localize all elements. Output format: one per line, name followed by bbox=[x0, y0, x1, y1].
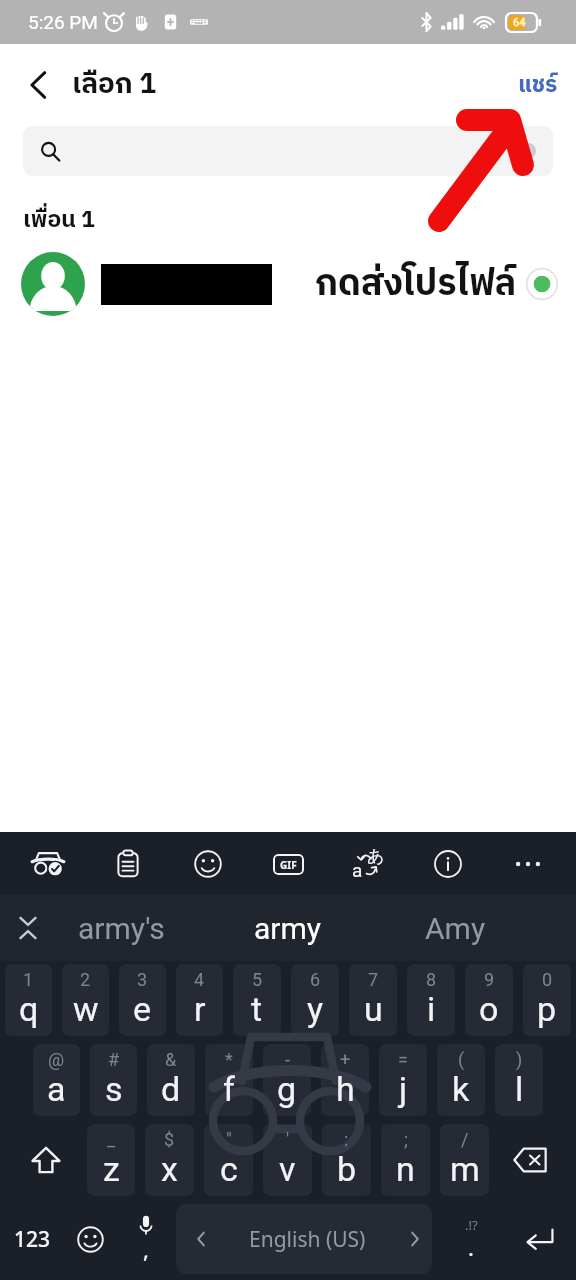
staticText: Amy bbox=[425, 911, 486, 946]
staticText: 9 bbox=[484, 969, 495, 990]
button[interactable]: 5 bbox=[233, 964, 281, 1036]
staticText: army's bbox=[78, 911, 165, 946]
button[interactable]: English (US) bbox=[176, 1204, 440, 1274]
button[interactable]: Clear bbox=[515, 138, 541, 164]
staticText: o bbox=[479, 989, 499, 1029]
staticText: 7 bbox=[368, 969, 379, 990]
button[interactable]: 6 bbox=[291, 964, 339, 1036]
staticText: + bbox=[340, 1049, 351, 1070]
button[interactable]: แชร์ bbox=[500, 54, 576, 116]
button[interactable]: ) bbox=[495, 1044, 543, 1116]
button[interactable]: , bbox=[116, 1204, 176, 1274]
staticText: v bbox=[279, 1149, 296, 1189]
staticText: ) bbox=[516, 1049, 523, 1070]
button[interactable]: ( bbox=[437, 1044, 485, 1116]
button[interactable]: army bbox=[187, 895, 388, 961]
staticText: กดส่งโปรไฟล์ bbox=[315, 255, 517, 314]
button[interactable]: Expand suggestions bbox=[0, 895, 56, 961]
staticText: i bbox=[427, 989, 436, 1029]
staticText: เลือก 1 bbox=[72, 62, 156, 108]
button[interactable]: ; bbox=[381, 1124, 430, 1196]
staticText: r bbox=[194, 989, 206, 1029]
button[interactable]: Enter bbox=[502, 1204, 576, 1274]
staticText: @ bbox=[48, 1049, 65, 1070]
button[interactable]: Translate bbox=[346, 842, 390, 886]
button[interactable]: & bbox=[147, 1044, 195, 1116]
staticText: a bbox=[47, 1069, 66, 1109]
button[interactable]: @ bbox=[33, 1044, 80, 1116]
staticText: u bbox=[364, 989, 383, 1029]
staticText: ; bbox=[404, 1129, 408, 1150]
staticText: x bbox=[161, 1149, 178, 1189]
button[interactable]: 123 bbox=[0, 1204, 64, 1274]
staticText: & bbox=[165, 1049, 177, 1070]
staticText: * bbox=[225, 1049, 233, 1070]
button[interactable]: 9 bbox=[465, 964, 513, 1036]
button[interactable]: 0 bbox=[523, 964, 571, 1036]
button[interactable]: 8 bbox=[407, 964, 455, 1036]
staticText: あ bbox=[367, 846, 385, 867]
staticText: ( bbox=[458, 1049, 465, 1070]
staticText: f bbox=[223, 1069, 235, 1109]
staticText: ' bbox=[286, 1129, 290, 1150]
button[interactable]: = bbox=[379, 1044, 427, 1116]
button[interactable]: Backspace bbox=[489, 1124, 571, 1196]
button[interactable]: _ bbox=[87, 1124, 135, 1196]
button[interactable]: Incognito bbox=[26, 842, 70, 886]
staticText: 123 bbox=[14, 1225, 51, 1254]
staticText: m bbox=[450, 1149, 480, 1189]
staticText: GIF bbox=[280, 858, 297, 872]
button[interactable]: Amy bbox=[388, 895, 522, 961]
button[interactable]: army's bbox=[56, 895, 187, 961]
button[interactable]: กดส่งโปรไฟล์ bbox=[0, 242, 576, 326]
button[interactable]: $ bbox=[145, 1124, 194, 1196]
staticText: a bbox=[352, 859, 363, 881]
staticText: 1 bbox=[23, 969, 34, 990]
staticText: g bbox=[277, 1069, 297, 1109]
button[interactable]: : bbox=[322, 1124, 371, 1196]
staticText: 3 bbox=[137, 969, 148, 990]
staticText: n bbox=[396, 1149, 415, 1189]
staticText: h bbox=[336, 1069, 355, 1109]
button[interactable]: 4 bbox=[176, 964, 223, 1036]
staticText: 2 bbox=[80, 969, 91, 990]
button[interactable]: 7 bbox=[349, 964, 397, 1036]
staticText: b bbox=[337, 1149, 357, 1189]
staticText: 6 bbox=[310, 969, 321, 990]
button[interactable]: - bbox=[263, 1044, 311, 1116]
staticText: w bbox=[73, 989, 99, 1029]
staticText: เพื่อน 1 bbox=[23, 201, 95, 239]
button[interactable]: .!? bbox=[440, 1204, 502, 1274]
staticText: / bbox=[461, 1129, 469, 1150]
button[interactable]: * bbox=[205, 1044, 253, 1116]
button[interactable]: Clipboard bbox=[106, 842, 150, 886]
button[interactable]: Emoji bbox=[64, 1204, 116, 1274]
staticText: $ bbox=[164, 1129, 175, 1150]
button[interactable]: GIF bbox=[266, 842, 310, 886]
button[interactable]: / bbox=[440, 1124, 489, 1196]
staticText: 5 bbox=[252, 969, 263, 990]
button[interactable]: 3 bbox=[119, 964, 166, 1036]
staticText: l bbox=[515, 1069, 524, 1109]
staticText: English (US) bbox=[249, 1225, 366, 1254]
staticText: : bbox=[344, 1129, 349, 1150]
staticText: = bbox=[398, 1049, 408, 1070]
button[interactable]: Info bbox=[426, 842, 470, 886]
button[interactable]: + bbox=[321, 1044, 369, 1116]
button[interactable]: More options bbox=[506, 842, 550, 886]
button[interactable]: ' bbox=[263, 1124, 312, 1196]
button[interactable]: Emoji bbox=[186, 842, 230, 886]
staticText: j bbox=[399, 1069, 408, 1109]
staticText: 8 bbox=[426, 969, 437, 990]
staticText: c bbox=[220, 1149, 238, 1189]
button[interactable]: Back bbox=[10, 57, 66, 113]
staticText: , bbox=[143, 1234, 149, 1264]
button[interactable]: " bbox=[204, 1124, 253, 1196]
button[interactable]: 2 bbox=[62, 964, 109, 1036]
button[interactable]: Shift bbox=[5, 1124, 87, 1196]
staticText: d bbox=[161, 1069, 181, 1109]
button[interactable]: Clear bbox=[23, 126, 553, 176]
staticText: แชร์ bbox=[518, 66, 558, 104]
button[interactable]: # bbox=[90, 1044, 137, 1116]
button[interactable]: 1 bbox=[5, 964, 52, 1036]
